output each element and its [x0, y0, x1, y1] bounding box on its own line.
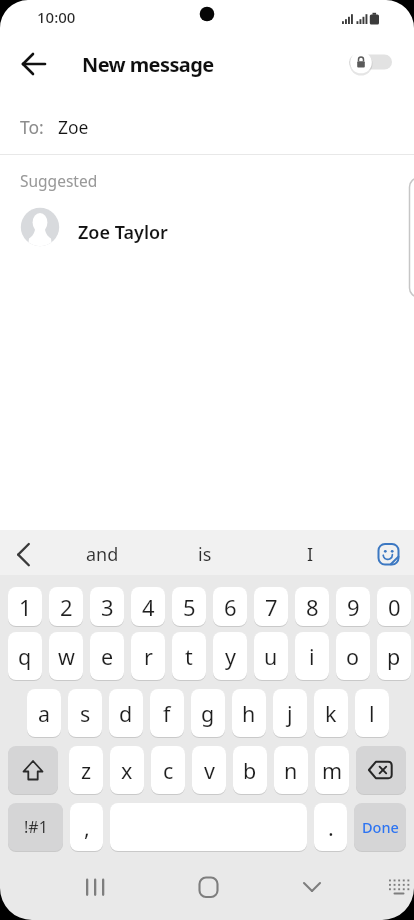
staticText: 5: [183, 592, 196, 622]
staticText: d: [119, 699, 133, 728]
staticText: 8: [306, 592, 319, 622]
staticText: j: [287, 699, 293, 728]
button[interactable]: Done: [354, 803, 406, 851]
button[interactable]: o: [336, 632, 370, 680]
staticText: Zoe Taylor: [78, 220, 168, 245]
staticText: 10:00: [37, 7, 76, 27]
button[interactable]: t: [172, 632, 206, 680]
staticText: c: [163, 756, 174, 785]
button[interactable]: i: [295, 632, 329, 680]
staticText: ,: [84, 813, 90, 842]
staticText: New message: [82, 51, 214, 78]
button[interactable]: 3: [90, 587, 124, 626]
button[interactable]: 2: [49, 587, 83, 626]
button[interactable]: 0: [377, 587, 411, 626]
button[interactable]: c: [151, 746, 185, 794]
button[interactable]: w: [49, 632, 83, 680]
button[interactable]: [78, 870, 118, 906]
button[interactable]: [0, 206, 414, 258]
staticText: o: [346, 642, 360, 671]
staticText: 9: [347, 592, 360, 622]
button[interactable]: [0, 100, 414, 154]
staticText: r: [144, 642, 153, 671]
button[interactable]: 9: [336, 587, 370, 626]
staticText: x: [121, 756, 133, 785]
button[interactable]: v: [192, 746, 226, 794]
staticText: t: [185, 642, 193, 671]
button[interactable]: 6: [213, 587, 247, 626]
button[interactable]: m: [315, 746, 349, 794]
button[interactable]: l: [355, 689, 389, 737]
staticText: k: [325, 699, 337, 728]
button[interactable]: is: [135, 532, 275, 576]
staticText: 1: [19, 592, 32, 622]
button[interactable]: [370, 538, 400, 568]
staticText: p: [387, 642, 401, 671]
button[interactable]: j: [273, 689, 307, 737]
staticText: Done: [362, 817, 399, 837]
staticText: l: [369, 699, 375, 728]
button[interactable]: I: [240, 532, 380, 576]
button[interactable]: and: [32, 532, 172, 576]
staticText: 0: [388, 592, 401, 622]
button[interactable]: 1: [8, 587, 42, 626]
staticText: 3: [101, 592, 114, 622]
button[interactable]: a: [27, 689, 61, 737]
button[interactable]: [8, 746, 58, 794]
button[interactable]: d: [109, 689, 143, 737]
button[interactable]: z: [69, 746, 103, 794]
staticText: f: [163, 699, 171, 728]
button[interactable]: g: [191, 689, 225, 737]
staticText: I: [307, 542, 314, 567]
button[interactable]: p: [377, 632, 411, 680]
button[interactable]: s: [68, 689, 102, 737]
staticText: g: [201, 699, 215, 728]
button[interactable]: n: [274, 746, 308, 794]
staticText: s: [80, 699, 91, 728]
button[interactable]: [6, 536, 40, 570]
staticText: a: [38, 699, 51, 728]
button[interactable]: [190, 870, 230, 906]
staticText: Zoe: [58, 115, 89, 139]
button[interactable]: b: [233, 746, 267, 794]
staticText: u: [264, 642, 278, 671]
staticText: e: [101, 642, 114, 671]
button[interactable]: y: [213, 632, 247, 680]
staticText: h: [242, 699, 256, 728]
staticText: i: [309, 642, 315, 671]
button[interactable]: x: [110, 746, 144, 794]
button[interactable]: r: [131, 632, 165, 680]
staticText: is: [198, 542, 212, 567]
button[interactable]: [14, 46, 52, 82]
button[interactable]: f: [150, 689, 184, 737]
button[interactable]: 5: [172, 587, 206, 626]
button[interactable]: [356, 746, 406, 794]
staticText: !#1: [24, 816, 48, 838]
button[interactable]: k: [314, 689, 348, 737]
button[interactable]: .: [314, 803, 347, 851]
button[interactable]: h: [232, 689, 266, 737]
button[interactable]: 7: [254, 587, 288, 626]
button[interactable]: [294, 870, 334, 906]
staticText: .: [328, 813, 334, 842]
staticText: Suggested: [20, 170, 98, 191]
button[interactable]: [382, 870, 414, 906]
button[interactable]: u: [254, 632, 288, 680]
staticText: v: [204, 756, 215, 785]
staticText: 4: [142, 592, 155, 622]
button[interactable]: ,: [70, 803, 103, 851]
staticText: q: [18, 642, 32, 671]
staticText: z: [81, 756, 92, 785]
staticText: n: [284, 756, 298, 785]
button[interactable]: q: [8, 632, 42, 680]
button[interactable]: [345, 48, 399, 80]
button[interactable]: 8: [295, 587, 329, 626]
button[interactable]: 4: [131, 587, 165, 626]
staticText: 2: [60, 592, 73, 622]
button[interactable]: e: [90, 632, 124, 680]
button[interactable]: !#1: [8, 803, 63, 851]
staticText: and: [86, 542, 119, 567]
staticText: b: [243, 756, 257, 785]
staticText: m: [322, 756, 343, 785]
